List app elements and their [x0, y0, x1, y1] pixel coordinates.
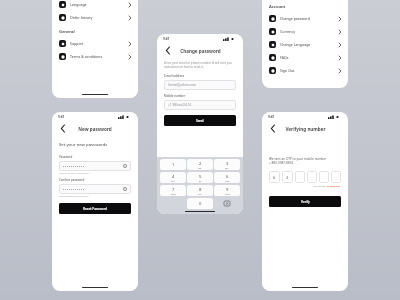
staticText: Not yet get? — [313, 185, 327, 188]
button[interactable]: Delete — [214, 198, 240, 209]
staticText: Verifying number — [285, 126, 326, 132]
staticText: Enter your email or phone number & will … — [164, 61, 236, 69]
button[interactable]: 0 — [187, 198, 213, 209]
staticText: 9:41 — [58, 115, 65, 119]
staticText: 6 — [273, 175, 276, 180]
button[interactable] — [59, 184, 131, 194]
staticText: 5 — [199, 174, 202, 180]
staticText: FAQs — [280, 55, 289, 60]
staticText: Change password — [180, 48, 221, 54]
button[interactable]: Back — [163, 46, 172, 55]
staticText: Change Language — [280, 42, 311, 47]
button[interactable]: 1 — [160, 159, 186, 170]
button[interactable]: 2 — [187, 159, 213, 170]
button[interactable]: FAQs — [262, 51, 348, 64]
button[interactable]: Terms & conditions — [52, 50, 138, 63]
button[interactable]: 3 — [282, 171, 293, 183]
staticText: Verify — [301, 200, 310, 204]
staticText: Order history — [70, 15, 93, 20]
staticText: Support — [70, 41, 84, 46]
staticText: 9:41 — [268, 115, 275, 119]
button[interactable]: Order history — [52, 11, 138, 24]
staticText: 4 — [172, 174, 175, 180]
staticText: PQRS — [171, 193, 176, 195]
staticText: MNO — [225, 180, 230, 182]
button[interactable]: 7 — [160, 185, 186, 196]
staticText: Must be at least 8 characters — [59, 172, 89, 175]
staticText: Terms & conditions — [70, 54, 103, 59]
button[interactable]: Currency — [262, 25, 348, 38]
staticText: Language — [70, 2, 87, 7]
button[interactable]: Sign Out — [262, 64, 348, 77]
button[interactable]: 6 — [214, 172, 240, 183]
button[interactable]: 4 — [160, 172, 186, 183]
button[interactable]: Resend OTP — [327, 185, 341, 188]
staticText: Some@yahoo.com — [168, 83, 196, 87]
staticText: WXYZ — [225, 193, 230, 195]
staticText: 9:41 — [163, 37, 170, 41]
button[interactable] — [331, 171, 341, 183]
staticText: Reset Password — [83, 207, 107, 211]
staticText: Set your new passwords — [59, 142, 108, 148]
button[interactable] — [307, 171, 317, 183]
staticText: New password — [78, 126, 112, 132]
staticText: TUV — [198, 193, 202, 195]
staticText: Send — [196, 119, 204, 123]
staticText: Confirm password — [59, 178, 85, 182]
staticText: 1 — [172, 162, 175, 168]
button[interactable]: Reset Password — [59, 203, 131, 214]
staticText: Account — [269, 4, 286, 9]
button[interactable]: Change Language — [262, 38, 348, 51]
staticText: Password — [59, 155, 73, 159]
staticText: 9 — [226, 187, 229, 193]
staticText: GHI — [171, 180, 175, 182]
staticText: +1 98(xxx)24-16 — [168, 103, 192, 107]
button[interactable]: Back — [58, 124, 67, 133]
staticText: Both passwords must match — [59, 195, 89, 198]
staticText: Mobile number — [164, 94, 186, 98]
button[interactable]: Some@yahoo.com — [164, 80, 236, 90]
button[interactable]: 8 — [187, 185, 213, 196]
button[interactable]: 6 — [269, 171, 280, 183]
staticText: 7 — [172, 187, 175, 193]
button[interactable] — [59, 161, 131, 171]
button[interactable]: Language — [52, 0, 138, 11]
button[interactable]: Send — [164, 115, 236, 126]
button[interactable]: +1 98(xxx)24-16 — [164, 100, 236, 110]
staticText: DEF — [225, 167, 229, 169]
staticText: Change password — [280, 16, 310, 21]
button[interactable]: Back — [268, 124, 277, 133]
staticText: ABC — [198, 167, 202, 169]
staticText: 0 — [199, 201, 202, 207]
button[interactable] — [295, 171, 305, 183]
staticText: 2 — [199, 161, 202, 167]
staticText: General — [59, 29, 75, 34]
button[interactable]: 5 — [187, 172, 213, 183]
staticText: Currency — [280, 29, 296, 34]
staticText: 8 — [199, 187, 202, 193]
staticText: We sent an OTP to your mobile number + 8… — [269, 157, 327, 165]
button[interactable]: Support — [52, 37, 138, 50]
staticText: JKL — [199, 180, 202, 182]
button[interactable]: 3 — [214, 159, 240, 170]
button[interactable]: 9 — [214, 185, 240, 196]
staticText: 3 — [286, 175, 289, 180]
button[interactable]: Change password — [262, 12, 348, 25]
button[interactable] — [319, 171, 329, 183]
button[interactable]: Verify — [269, 196, 341, 207]
staticText: 6 — [226, 174, 229, 180]
staticText: E-mail address — [164, 74, 185, 78]
staticText: Sign Out — [280, 68, 295, 73]
staticText: 3 — [226, 161, 229, 167]
staticText: Resend OTP — [327, 185, 341, 188]
